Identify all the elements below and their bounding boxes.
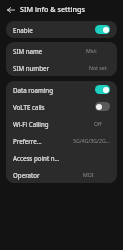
button[interactable]: Off [95, 102, 110, 111]
button[interactable]: SIM name [6, 42, 117, 59]
staticText: Mioi [86, 47, 97, 54]
staticText: Not set [89, 64, 107, 71]
button[interactable]: Operator [6, 166, 117, 183]
button[interactable]: Back [4, 3, 17, 16]
button[interactable]: Data roaming [6, 81, 117, 98]
staticText: Operator [13, 171, 40, 179]
staticText: VoLTE calls [13, 103, 95, 111]
button[interactable]: SIM number [6, 59, 117, 76]
staticText: Wi-Fi Calling [13, 120, 49, 128]
staticText: 5G/4G/3G/2G… [73, 137, 110, 144]
button[interactable]: Access point names [6, 149, 117, 166]
button[interactable]: Wi-Fi Calling [6, 115, 117, 132]
staticText: Preferred network type [13, 137, 43, 145]
button[interactable]: VoLTE calls [6, 98, 117, 115]
button[interactable]: Preferred network type [6, 132, 117, 149]
staticText: Off [94, 120, 102, 127]
staticText: Enable [13, 26, 95, 34]
staticText: Access point names [13, 154, 61, 162]
staticText: SIM info & settings [20, 4, 85, 14]
staticText: MOI [83, 171, 94, 178]
button[interactable]: On [95, 85, 110, 94]
button[interactable]: On [95, 25, 110, 34]
button[interactable]: Enable [6, 21, 117, 38]
staticText: SIM name [13, 47, 43, 55]
staticText: SIM number [13, 64, 49, 72]
staticText: Data roaming [13, 86, 95, 94]
